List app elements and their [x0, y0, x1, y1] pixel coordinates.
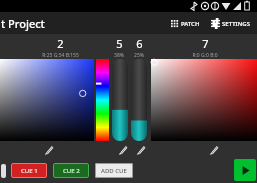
- button[interactable]: CUE 1: [11, 163, 47, 178]
- staticText: t Project: [1, 16, 45, 31]
- button[interactable]: Edit channel: [208, 144, 219, 155]
- staticText: 25%: [134, 52, 144, 58]
- button[interactable]: [131, 59, 147, 141]
- staticText: R:0 G:0 B:0: [192, 52, 218, 58]
- staticText: R:25 G:54 B:155: [42, 52, 79, 58]
- button[interactable]: ADD CUE: [95, 163, 133, 178]
- button[interactable]: [112, 59, 128, 141]
- staticText: 2: [57, 36, 64, 51]
- button[interactable]: Edit channel: [135, 144, 146, 155]
- staticText: 38%: [114, 52, 124, 58]
- button[interactable]: CUE 2: [53, 163, 89, 178]
- button[interactable]: SETTINGS: [208, 16, 253, 31]
- staticText: PATCH: [181, 20, 200, 28]
- staticText: 7: [202, 36, 209, 51]
- staticText: CUE 1: [21, 167, 38, 175]
- staticText: ADD CUE: [101, 167, 127, 175]
- staticText: CUE 2: [63, 167, 80, 175]
- button[interactable]: Edit channel: [117, 144, 128, 155]
- button[interactable]: Previous cue: [1, 164, 6, 178]
- staticText: SETTINGS: [222, 20, 250, 28]
- button[interactable]: [96, 59, 109, 141]
- button[interactable]: Edit channel: [43, 144, 54, 155]
- button[interactable]: Play: [234, 159, 256, 181]
- button[interactable]: [0, 59, 94, 141]
- button[interactable]: [151, 59, 257, 141]
- staticText: 5: [116, 36, 123, 51]
- button[interactable]: PATCH: [168, 17, 203, 31]
- staticText: 6: [136, 36, 143, 51]
